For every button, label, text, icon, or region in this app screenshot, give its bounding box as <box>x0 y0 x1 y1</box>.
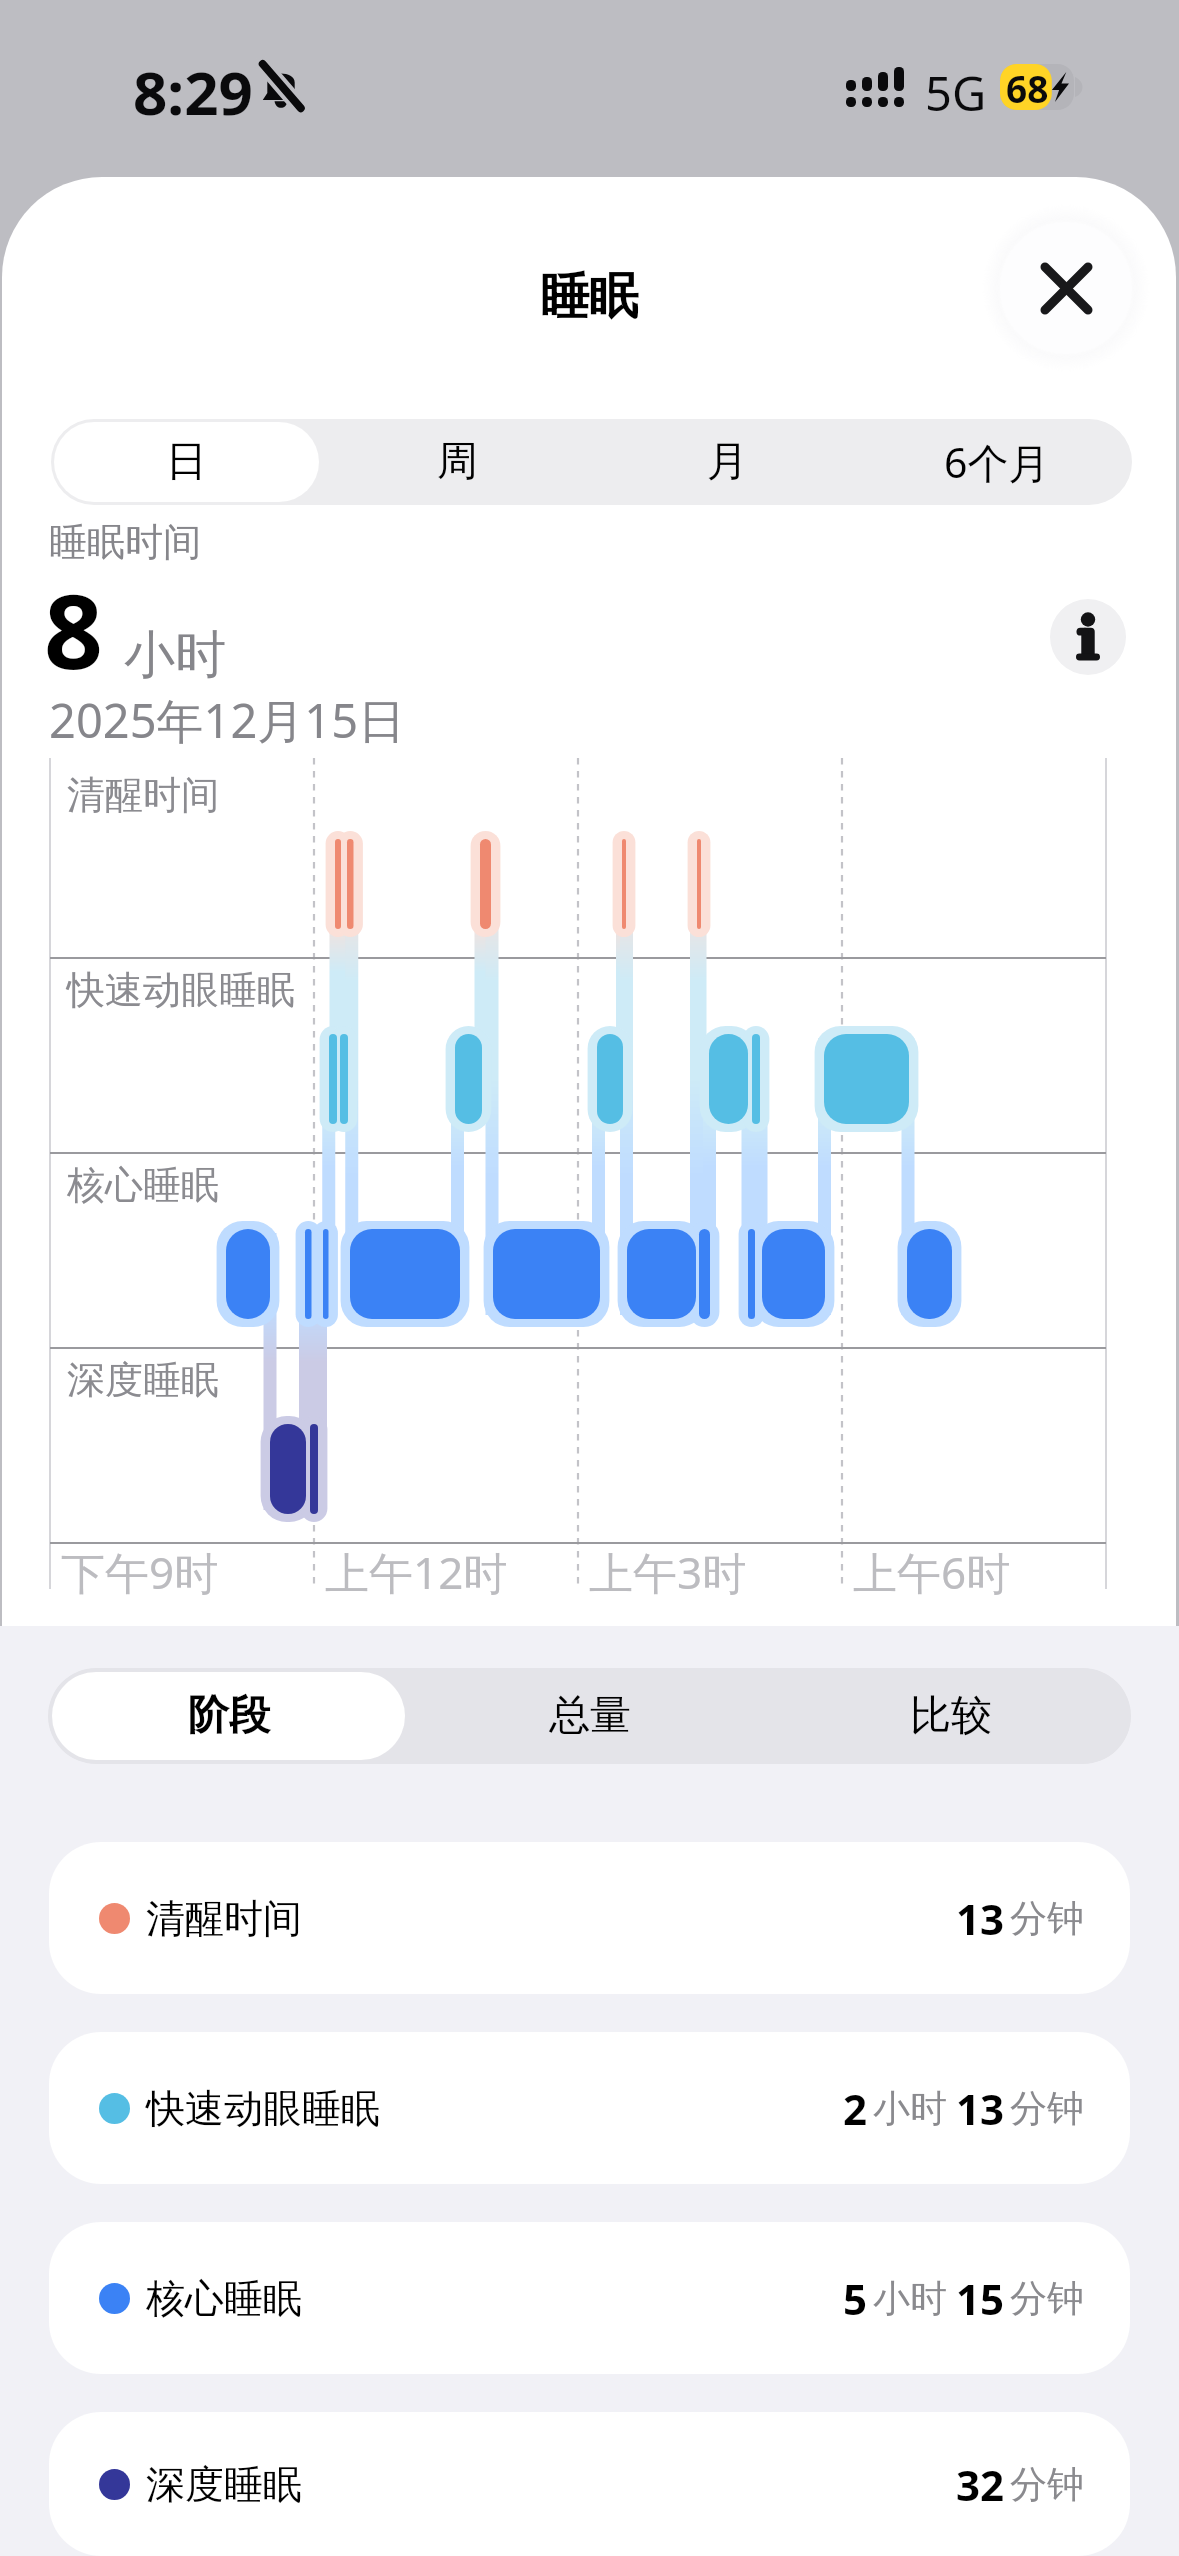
button[interactable]: 日 <box>51 419 322 505</box>
staticText: 周 <box>437 436 478 488</box>
staticText: 快速动眼睡眠 <box>67 966 295 1014</box>
staticText: 比较 <box>910 1690 992 1742</box>
staticText: 深度睡眠 <box>146 2460 302 2509</box>
staticText: 小时 <box>873 2085 947 2132</box>
button[interactable]: 月 <box>592 419 862 505</box>
staticText: 上午12时 <box>325 1542 508 1602</box>
staticText: 小时 <box>873 2275 947 2322</box>
button[interactable]: 比较 <box>770 1668 1131 1764</box>
staticText: 2 <box>843 2080 868 2137</box>
staticText: 分钟 <box>1010 2275 1084 2322</box>
staticText: 快速动眼睡眠 <box>146 2084 380 2133</box>
button[interactable]: Close <box>1000 222 1132 354</box>
staticText: 小时 <box>124 623 226 687</box>
button[interactable]: 清醒时间 <box>49 1842 1130 1994</box>
staticText: 睡眠 <box>540 266 638 328</box>
staticText: 分钟 <box>1010 2085 1084 2132</box>
button[interactable]: 核心睡眠 <box>49 2222 1130 2374</box>
staticText: 分钟 <box>1010 1895 1084 1942</box>
button[interactable]: 总量 <box>409 1668 770 1764</box>
staticText: 15 <box>956 2270 1005 2327</box>
staticText: 32 <box>956 2456 1005 2513</box>
staticText: 总量 <box>549 1690 631 1742</box>
staticText: 上午6时 <box>853 1542 1011 1602</box>
staticText: 68 <box>1006 63 1049 109</box>
staticText: 深度睡眠 <box>67 1356 219 1404</box>
staticText: 上午3时 <box>589 1542 747 1602</box>
button[interactable]: 快速动眼睡眠 <box>49 2032 1130 2184</box>
staticText: 日 <box>166 436 207 488</box>
staticText: 清醒时间 <box>146 1894 302 1943</box>
staticText: 下午9时 <box>61 1542 219 1602</box>
button[interactable]: Info <box>1050 599 1126 675</box>
staticText: 核心睡眠 <box>146 2274 302 2323</box>
staticText: 8 <box>44 559 103 699</box>
staticText: 清醒时间 <box>67 771 219 819</box>
staticText: 分钟 <box>1010 2461 1084 2508</box>
staticText: 核心睡眠 <box>67 1161 219 1209</box>
staticText: 月 <box>707 436 748 488</box>
button[interactable]: 阶段 <box>48 1668 409 1764</box>
staticText: 13 <box>956 1890 1005 1947</box>
button[interactable]: 6个月 <box>862 419 1132 505</box>
button[interactable]: 深度睡眠 <box>49 2412 1130 2556</box>
staticText: 阶段 <box>188 1690 270 1742</box>
staticText: 6个月 <box>944 434 1050 490</box>
staticText: 5G <box>925 61 987 125</box>
staticText: 2025年12月15日 <box>49 688 406 752</box>
staticText: 睡眠时间 <box>49 518 201 566</box>
staticText: 8:29 <box>133 51 253 133</box>
button[interactable]: 周 <box>322 419 592 505</box>
staticText: 13 <box>956 2080 1005 2137</box>
staticText: 5 <box>843 2270 868 2327</box>
